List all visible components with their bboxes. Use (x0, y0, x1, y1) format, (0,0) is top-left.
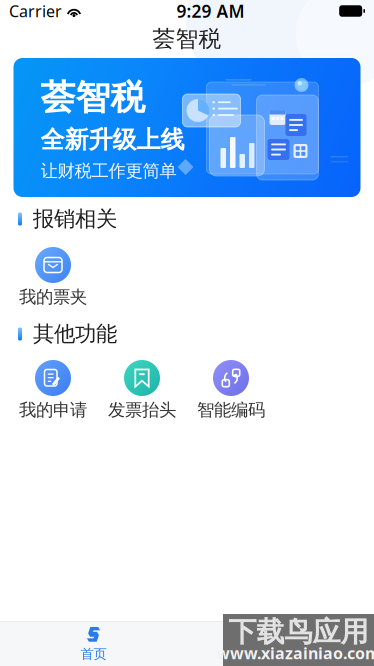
staticText: 发票抬头 (108, 399, 176, 421)
staticText: 9:29 AM (177, 0, 245, 22)
button[interactable]: 我的票夹 (8, 247, 97, 316)
staticText: 全新升级上线 (40, 125, 184, 154)
staticText: 其他功能 (33, 321, 117, 347)
button[interactable]: 首页 (0, 622, 187, 666)
staticText: Carrier (9, 0, 62, 22)
staticText: 荟智税 (40, 76, 145, 119)
staticText: 我的申请 (19, 399, 87, 421)
staticText: 智能编码 (197, 399, 265, 421)
staticText: www.xiazainiao.com (216, 642, 374, 664)
button[interactable]: 发票抬头 (97, 360, 186, 429)
staticText: 下载鸟应用 (228, 615, 368, 649)
staticText: 首页 (80, 646, 106, 662)
staticText: 我的票夹 (19, 286, 87, 308)
staticText: 报销相关 (33, 206, 117, 232)
staticText: 让财税工作更简单 (40, 160, 176, 182)
button[interactable]: 我的申请 (8, 360, 97, 429)
staticText: 荟智税 (152, 25, 221, 53)
button[interactable]: 智能编码 (186, 360, 275, 429)
